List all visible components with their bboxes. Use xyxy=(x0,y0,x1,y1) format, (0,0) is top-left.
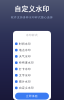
button[interactable]: 立即体验 xyxy=(15,93,49,100)
staticText: 图片水印 xyxy=(19,80,31,83)
staticText: 打卡水印 xyxy=(19,67,31,71)
staticText: 天气水印 xyxy=(19,55,31,58)
button[interactable]: 自定义水印 xyxy=(13,85,51,91)
staticText: 经纬度水印 xyxy=(19,61,34,64)
staticText: 文字水印 xyxy=(19,74,31,77)
staticText: 自定义水印 xyxy=(19,86,34,90)
staticText: 自定义水印 xyxy=(14,5,49,13)
button[interactable]: 天气水印 xyxy=(13,53,51,59)
button[interactable]: 经纬度水印 xyxy=(13,59,51,66)
staticText: 软件支持多种水印样式随心选择 xyxy=(11,16,53,19)
button[interactable]: 地点水印 xyxy=(13,47,51,53)
button[interactable]: 图片水印 xyxy=(13,78,51,85)
staticText: 水印样式 xyxy=(26,33,38,37)
button[interactable]: 文字水印 xyxy=(13,72,51,78)
staticText: 立即体验 xyxy=(26,94,38,98)
button[interactable]: 时间水印 xyxy=(13,41,51,47)
staticText: 时间水印 xyxy=(19,42,31,45)
button[interactable]: 打卡水印 xyxy=(13,66,51,72)
staticText: 地点水印 xyxy=(19,48,31,52)
